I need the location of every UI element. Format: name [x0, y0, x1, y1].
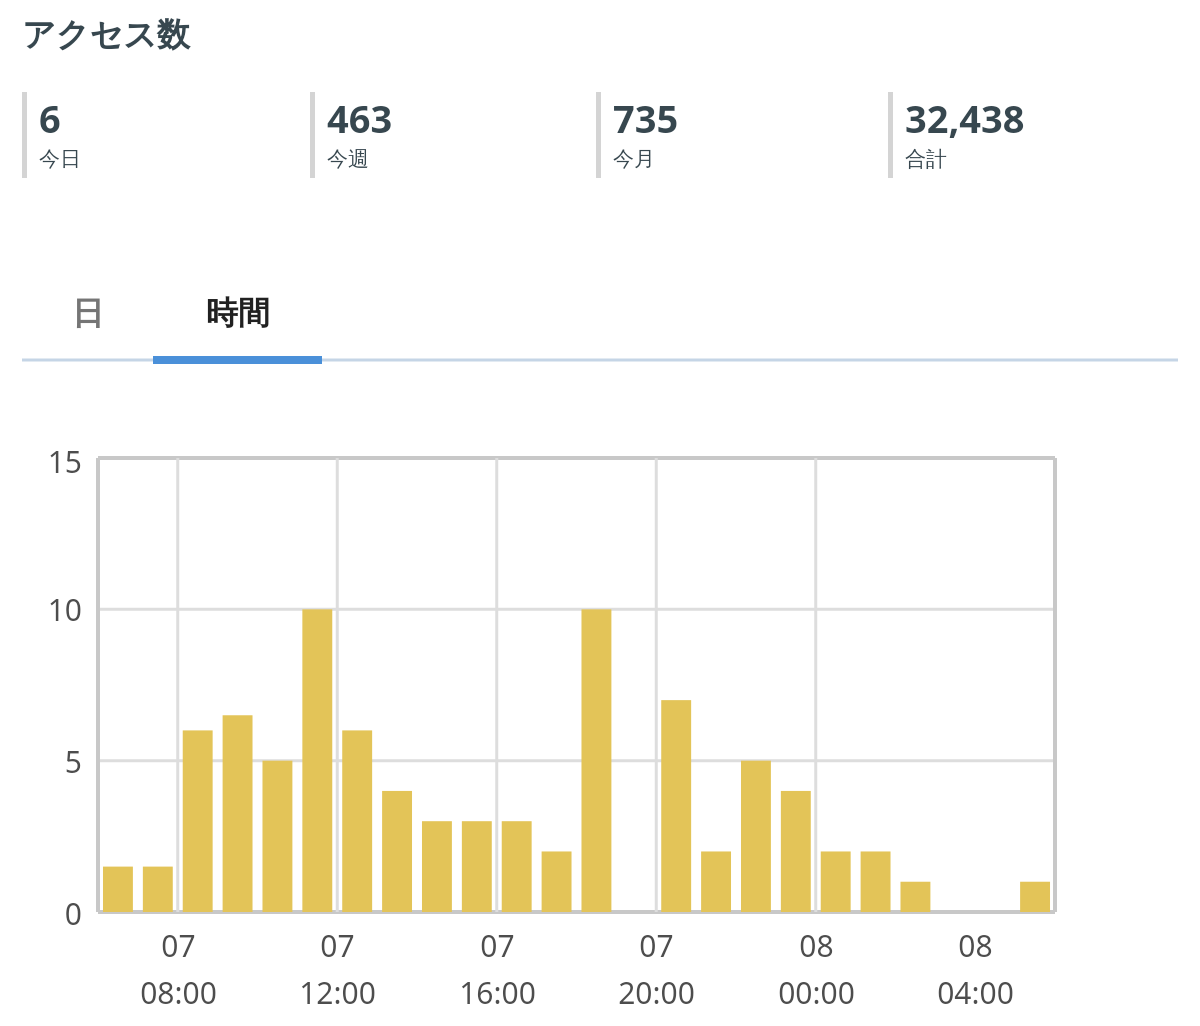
button[interactable]: 32,438 [888, 92, 1025, 178]
staticText: 07 [639, 925, 674, 966]
staticText: 5 [64, 741, 82, 782]
staticText: 20:00 [618, 972, 695, 1013]
staticText: 今月 [613, 146, 655, 172]
staticText: 735 [613, 92, 679, 144]
button[interactable]: 735 [596, 92, 679, 178]
staticText: アクセス数 [22, 14, 191, 56]
staticText: 07 [161, 925, 196, 966]
button[interactable]: 463 [310, 92, 393, 178]
button[interactable]: 時間 [153, 268, 322, 358]
staticText: 16:00 [459, 972, 536, 1013]
staticText: 合計 [905, 146, 947, 172]
staticText: 12:00 [299, 972, 376, 1013]
staticText: 08 [958, 925, 993, 966]
staticText: 今週 [327, 146, 369, 172]
button[interactable]: 6 [22, 92, 81, 178]
staticText: 0 [64, 893, 82, 934]
staticText: 日 [72, 293, 104, 333]
staticText: 時間 [206, 293, 270, 333]
staticText: 今日 [39, 146, 81, 172]
staticText: 463 [327, 92, 393, 144]
staticText: 15 [47, 441, 82, 482]
staticText: 6 [39, 92, 61, 144]
staticText: 04:00 [937, 972, 1014, 1013]
button[interactable]: 日 [22, 268, 153, 358]
staticText: 10 [47, 589, 82, 630]
staticText: 08 [799, 925, 834, 966]
staticText: 07 [480, 925, 515, 966]
staticText: 07 [320, 925, 355, 966]
staticText: 32,438 [905, 92, 1025, 144]
staticText: 00:00 [778, 972, 855, 1013]
staticText: 08:00 [140, 972, 217, 1013]
